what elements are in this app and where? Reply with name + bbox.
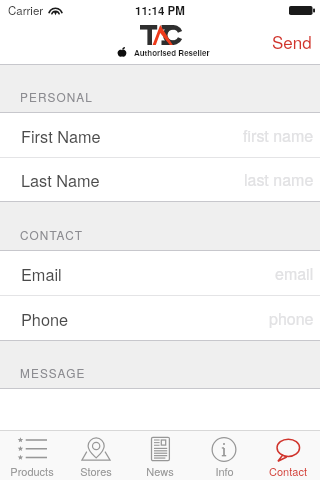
- staticText: Carrier: [8, 2, 44, 18]
- button[interactable]: News: [128, 431, 192, 480]
- staticText: phone: [269, 307, 314, 330]
- button[interactable]: Info: [192, 431, 256, 480]
- staticText: Send: [272, 29, 312, 53]
- staticText: MESSAGE: [20, 364, 86, 381]
- staticText: CONTACT: [20, 226, 84, 243]
- staticText: PERSONAL: [20, 88, 93, 105]
- staticText: email: [275, 262, 314, 285]
- staticText: Phone: [21, 307, 69, 330]
- button[interactable]: Contact: [256, 431, 320, 480]
- button[interactable]: Phone: [0, 296, 320, 340]
- button[interactable]: First Name: [0, 113, 320, 157]
- staticText: Contact: [269, 463, 307, 479]
- button[interactable]: Send: [258, 20, 320, 64]
- button[interactable]: Last Name: [0, 158, 320, 201]
- staticText: Email: [21, 262, 62, 285]
- staticText: first name: [243, 124, 314, 147]
- button[interactable]: Stores: [64, 431, 128, 480]
- staticText: First Name: [21, 124, 101, 147]
- staticText: Stores: [80, 463, 112, 479]
- staticText: Info: [215, 463, 234, 479]
- button[interactable]: Products: [0, 431, 64, 480]
- staticText: 11:14 PM: [135, 2, 185, 18]
- staticText: Products: [10, 463, 54, 479]
- staticText: last name: [244, 168, 314, 191]
- button[interactable]: Email: [0, 251, 320, 295]
- staticText: Authorised Reseller: [134, 47, 210, 58]
- staticText: Last Name: [21, 168, 100, 191]
- staticText: News: [146, 463, 174, 479]
